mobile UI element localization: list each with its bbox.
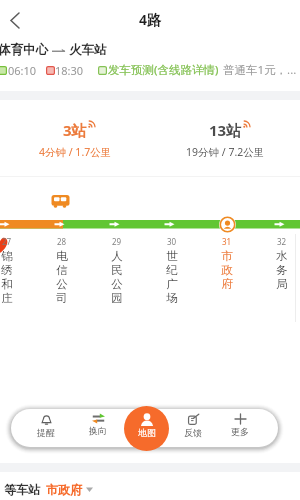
staticText: 世 xyxy=(166,249,178,263)
staticText: 信 xyxy=(56,263,68,277)
staticText: 务 xyxy=(276,263,288,277)
staticText: 火车站 xyxy=(69,42,107,58)
button[interactable]: Back xyxy=(0,5,30,35)
button[interactable]: 反馈 xyxy=(171,409,215,447)
staticText: 29 xyxy=(112,236,122,247)
staticText: 司 xyxy=(56,291,68,305)
staticText: 局 xyxy=(276,277,288,291)
staticText: 公 xyxy=(56,277,68,291)
staticText: 3站 xyxy=(63,120,87,140)
staticText: 广 xyxy=(166,277,178,291)
staticText: 地图 xyxy=(138,427,156,438)
button[interactable]: 提醒 xyxy=(24,409,68,447)
button[interactable]: 13站 xyxy=(150,120,300,159)
staticText: 政 xyxy=(221,263,233,277)
staticText: 场 xyxy=(166,291,178,305)
staticText: 27 xyxy=(2,236,12,247)
staticText: 市政府 xyxy=(46,482,82,497)
staticText: 公 xyxy=(111,277,123,291)
staticText: 18:30 xyxy=(55,63,84,78)
staticText: 32 xyxy=(277,236,287,247)
button[interactable]: 换向 xyxy=(76,409,120,447)
button[interactable]: 3站 xyxy=(0,120,150,159)
staticText: 绣 xyxy=(1,263,13,277)
button[interactable]: 更多 xyxy=(218,409,262,447)
staticText: 庄 xyxy=(1,291,13,305)
staticText: 反馈 xyxy=(184,427,202,438)
staticText: 民 xyxy=(111,263,123,277)
staticText: 换向 xyxy=(89,425,107,436)
staticText: 体育中心 xyxy=(0,42,48,58)
button[interactable]: 发车预测(含线路详情) xyxy=(98,62,219,78)
staticText: 市 xyxy=(221,249,233,263)
staticText: 人 xyxy=(111,249,123,263)
staticText: 水 xyxy=(276,249,288,263)
staticText: 4路 xyxy=(139,10,162,29)
staticText: 府 xyxy=(221,277,233,291)
button[interactable]: 地图 xyxy=(124,406,169,451)
staticText: 等车站 xyxy=(4,482,40,497)
staticText: 园 xyxy=(111,291,123,305)
staticText: 更多 xyxy=(231,426,249,437)
staticText: 电 xyxy=(56,249,68,263)
staticText: 28 xyxy=(57,236,67,247)
staticText: 13站 xyxy=(209,120,242,140)
button[interactable]: 市政府 xyxy=(46,482,93,497)
staticText: 纪 xyxy=(166,263,178,277)
staticText: 06:10 xyxy=(8,63,37,78)
staticText: 锦 xyxy=(1,249,13,263)
staticText: 30 xyxy=(167,236,177,247)
staticText: 普通车1元，... xyxy=(223,62,297,78)
staticText: 4分钟 / 1.7公里 xyxy=(39,145,112,159)
staticText: 发车预测(含线路详情) xyxy=(108,62,219,78)
staticText: 31 xyxy=(222,236,232,247)
staticText: 和 xyxy=(1,277,13,291)
staticText: 19分钟 / 7.2公里 xyxy=(186,145,265,159)
staticText: 提醒 xyxy=(37,427,55,438)
